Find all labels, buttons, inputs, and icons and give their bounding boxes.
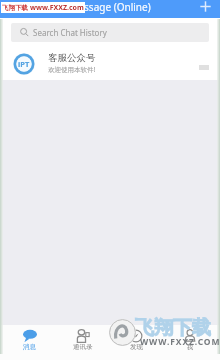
staticText: 消息 (23, 343, 36, 351)
staticText: 通讯录 (73, 343, 93, 351)
staticText: 飞翔下载 (135, 316, 211, 340)
staticText: 飞翔下载 (2, 4, 28, 12)
button[interactable]: 消息 (3, 325, 56, 360)
staticText: 客服公众号 (48, 52, 96, 64)
button[interactable]: 通讯录 (56, 325, 109, 360)
staticText: Search Chat History (33, 27, 107, 38)
staticText: WWW.FXXZ.COM (140, 336, 220, 348)
staticText: 发现 (130, 343, 143, 351)
button[interactable]: 发现 (109, 325, 163, 360)
button[interactable]: iPT (0, 48, 220, 80)
staticText: 欢迎使用本软件! (48, 65, 96, 74)
button[interactable]: Search Chat History (11, 23, 209, 42)
staticText: 我 (187, 343, 194, 351)
staticText: www.FXXZ.com (30, 3, 84, 13)
button[interactable]: Add (196, 0, 214, 15)
staticText: iPT (18, 59, 30, 69)
staticText: Message (Online) (69, 0, 151, 14)
button[interactable]: 我 (163, 325, 217, 360)
